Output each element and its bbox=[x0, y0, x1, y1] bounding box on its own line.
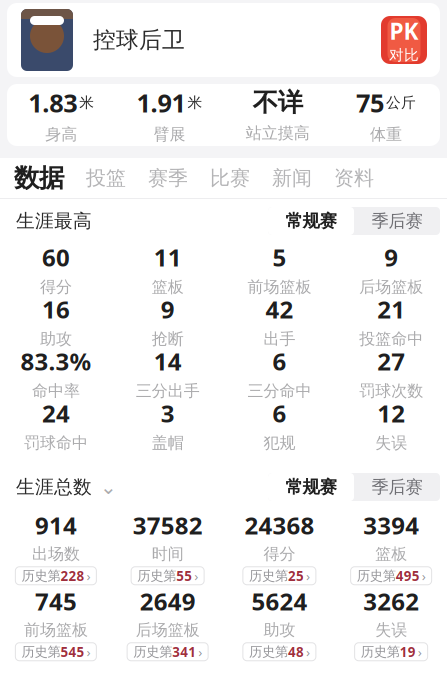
button[interactable]: 投篮 bbox=[86, 166, 126, 190]
staticText: 历史第 bbox=[249, 568, 288, 584]
staticText: 不详 bbox=[253, 87, 303, 118]
staticText: ⌄ bbox=[100, 476, 117, 498]
staticText: 出手 bbox=[263, 329, 295, 349]
staticText: › bbox=[198, 643, 202, 661]
button[interactable]: 比赛 bbox=[210, 166, 250, 190]
staticText: 助攻 bbox=[40, 329, 72, 349]
staticText: 投篮 bbox=[86, 166, 126, 190]
button[interactable]: 常规赛 bbox=[268, 207, 354, 235]
button[interactable]: 新闻 bbox=[272, 166, 312, 190]
staticText: 83.3% bbox=[20, 345, 91, 377]
staticText: 常规赛 bbox=[285, 476, 336, 498]
staticText: 后场篮板 bbox=[359, 277, 423, 297]
staticText: 3 bbox=[161, 397, 175, 429]
staticText: › bbox=[306, 643, 310, 661]
staticText: 体重 bbox=[370, 124, 402, 144]
staticText: 三分命中 bbox=[247, 381, 311, 401]
button[interactable]: 展开生涯总数 bbox=[92, 473, 117, 501]
staticText: 27 bbox=[377, 345, 405, 377]
button[interactable]: 数据 bbox=[14, 162, 64, 193]
staticText: 投篮命中 bbox=[359, 329, 423, 349]
staticText: 历史第 bbox=[137, 568, 176, 584]
staticText: 对比 bbox=[389, 46, 419, 64]
staticText: 341 bbox=[172, 643, 196, 661]
staticText: 罚球次数 bbox=[359, 381, 423, 401]
staticText: 新闻 bbox=[272, 166, 312, 190]
button[interactable]: 常规赛 bbox=[268, 473, 354, 501]
staticText: 745 bbox=[35, 585, 77, 617]
staticText: › bbox=[422, 567, 426, 585]
staticText: 25 bbox=[288, 567, 304, 585]
staticText: 历史第 bbox=[133, 644, 172, 660]
staticText: 臂展 bbox=[153, 124, 185, 144]
staticText: 24368 bbox=[244, 509, 314, 541]
staticText: 失误 bbox=[375, 620, 407, 640]
staticText: 60 bbox=[42, 241, 70, 273]
staticText: 得分 bbox=[40, 277, 72, 297]
staticText: 资料 bbox=[334, 166, 374, 190]
staticText: 篮板 bbox=[152, 277, 184, 297]
button[interactable]: 历史第 bbox=[127, 643, 208, 661]
staticText: 21 bbox=[377, 293, 405, 325]
staticText: 季后赛 bbox=[371, 210, 422, 232]
staticText: › bbox=[194, 567, 198, 585]
staticText: 495 bbox=[396, 567, 420, 585]
staticText: 身高 bbox=[45, 124, 77, 144]
button[interactable]: 历史第 bbox=[243, 567, 316, 585]
staticText: 历史第 bbox=[361, 644, 400, 660]
button[interactable]: 历史第 bbox=[351, 567, 432, 585]
staticText: 914 bbox=[35, 509, 77, 541]
staticText: 55 bbox=[176, 567, 192, 585]
staticText: 赛季 bbox=[148, 166, 188, 190]
button[interactable]: 季后赛 bbox=[354, 207, 440, 235]
staticText: 米 bbox=[79, 94, 94, 112]
staticText: 比赛 bbox=[210, 166, 250, 190]
staticText: 历史第 bbox=[21, 644, 60, 660]
staticText: 罚球命中 bbox=[24, 433, 88, 453]
staticText: 助攻 bbox=[263, 620, 295, 640]
button[interactable]: 赛季 bbox=[148, 166, 188, 190]
staticText: 9 bbox=[161, 293, 175, 325]
staticText: 站立摸高 bbox=[246, 123, 310, 143]
staticText: 历史第 bbox=[249, 644, 288, 660]
button[interactable]: PK 对比 bbox=[378, 14, 430, 66]
staticText: 6 bbox=[272, 397, 286, 429]
staticText: 5 bbox=[272, 241, 286, 273]
staticText: 公斤 bbox=[386, 94, 416, 112]
staticText: 历史第 bbox=[357, 568, 396, 584]
staticText: 三分出手 bbox=[136, 381, 200, 401]
staticText: 前场篮板 bbox=[24, 620, 88, 640]
staticText: 19 bbox=[400, 643, 416, 661]
staticText: 12 bbox=[377, 397, 405, 429]
button[interactable]: 历史第 bbox=[355, 643, 428, 661]
staticText: 后场篮板 bbox=[136, 620, 200, 640]
staticText: 9 bbox=[384, 241, 398, 273]
staticText: 5624 bbox=[251, 585, 307, 617]
staticText: 11 bbox=[154, 241, 182, 273]
staticText: 盖帽 bbox=[152, 433, 184, 453]
staticText: 3262 bbox=[363, 585, 419, 617]
staticText: › bbox=[86, 643, 90, 661]
button[interactable]: 资料 bbox=[334, 166, 374, 190]
staticText: 545 bbox=[60, 643, 84, 661]
staticText: 历史第 bbox=[21, 568, 60, 584]
button[interactable]: 历史第 bbox=[243, 643, 316, 661]
button[interactable]: 历史第 bbox=[131, 567, 204, 585]
staticText: 前场篮板 bbox=[247, 277, 311, 297]
button[interactable]: 历史第 bbox=[15, 567, 96, 585]
staticText: PK bbox=[389, 16, 418, 46]
staticText: 1.91 bbox=[136, 86, 185, 119]
staticText: 生涯最高 bbox=[16, 209, 92, 232]
staticText: 出场数 bbox=[32, 544, 80, 564]
button[interactable]: 季后赛 bbox=[354, 473, 440, 501]
staticText: 16 bbox=[42, 293, 70, 325]
staticText: 数据 bbox=[14, 162, 64, 193]
staticText: 228 bbox=[60, 567, 84, 585]
staticText: 时间 bbox=[152, 544, 184, 564]
staticText: 3394 bbox=[363, 509, 419, 541]
button[interactable]: 历史第 bbox=[15, 643, 96, 661]
staticText: › bbox=[418, 643, 422, 661]
staticText: 米 bbox=[187, 94, 202, 112]
staticText: 常规赛 bbox=[285, 210, 336, 232]
staticText: 命中率 bbox=[32, 381, 80, 401]
